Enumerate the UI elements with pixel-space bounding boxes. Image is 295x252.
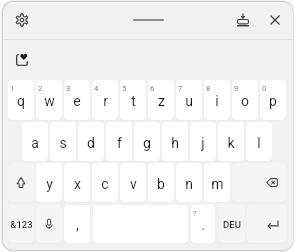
staticText: 1 [10,84,15,93]
staticText: 0 [262,84,267,93]
staticText: c [101,176,109,192]
button[interactable]: 0 [260,80,286,120]
button[interactable]: Settings [12,10,32,30]
button[interactable]: DEU [219,205,245,243]
button[interactable]: a [22,122,48,161]
button[interactable]: m [204,163,230,202]
staticText: q [17,93,25,109]
staticText: &123 [10,219,33,230]
staticText: j [201,135,205,151]
button[interactable]: 6 [148,80,174,120]
button[interactable]: Enter [247,205,287,243]
button[interactable]: Voice input [36,205,62,243]
staticText: . [201,217,205,233]
button[interactable]: c [92,163,118,202]
staticText: u [185,93,193,109]
button[interactable]: 7 [176,80,202,120]
staticText: e [73,93,81,109]
staticText: DEU [223,219,241,230]
button[interactable]: Shift [8,163,34,202]
staticText: 4 [94,84,99,93]
staticText: ? [193,209,197,218]
staticText: 6 [150,84,155,93]
staticText: 3 [66,84,71,93]
staticText: 2 [38,84,43,93]
button[interactable]: k [218,122,244,161]
button[interactable]: Stickers [12,50,32,70]
staticText: i [215,93,219,109]
staticText: p [269,93,277,109]
staticText: 8 [206,84,211,93]
button[interactable]: b [148,163,174,202]
staticText: d [87,135,95,151]
staticText: 7 [178,84,183,93]
button[interactable]: 2 [36,80,62,120]
staticText: 9 [234,84,239,93]
button[interactable]: , [64,205,90,243]
staticText: s [59,135,67,151]
button[interactable]: x [64,163,90,202]
button[interactable]: 3 [64,80,90,120]
button[interactable]: l [246,122,272,161]
staticText: , [76,217,79,233]
staticText: y [46,176,53,192]
button[interactable]: v [120,163,146,202]
button[interactable]: ? [191,205,215,243]
staticText: l [257,135,261,151]
button[interactable]: n [176,163,202,202]
button[interactable]: 4 [92,80,118,120]
staticText: 5 [122,84,127,93]
staticText: b [157,176,165,192]
staticText: h [171,135,179,151]
button[interactable]: Backspace [232,163,286,202]
button[interactable]: 1 [8,80,34,120]
button[interactable]: s [50,122,76,161]
button[interactable]: g [134,122,160,161]
staticText: x [74,176,81,192]
button[interactable]: d [78,122,104,161]
staticText: w [44,93,55,109]
staticText: g [143,135,151,151]
button[interactable]: &123 [8,205,34,243]
staticText: f [117,135,122,151]
button[interactable]: Dock keyboard [233,10,253,30]
staticText: z [158,93,165,109]
button[interactable]: j [190,122,216,161]
button[interactable]: f [106,122,132,161]
button[interactable]: y [36,163,62,202]
button[interactable]: 9 [232,80,258,120]
button[interactable]: h [162,122,188,161]
staticText: a [31,135,39,151]
staticText: n [185,176,193,192]
staticText: o [241,93,249,109]
staticText: m [211,176,224,192]
staticText: k [227,135,235,151]
button[interactable]: 8 [204,80,230,120]
staticText: t [131,93,136,109]
staticText: r [103,93,108,109]
staticText: v [130,176,137,192]
button[interactable]: 5 [120,80,146,120]
button[interactable]: Close [265,10,285,30]
